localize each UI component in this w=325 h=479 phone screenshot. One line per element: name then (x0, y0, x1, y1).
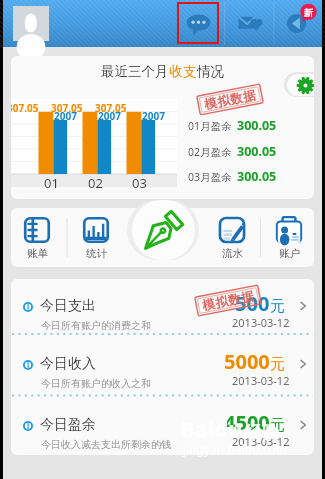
staticText: 今日收入 (40, 355, 96, 373)
staticText: 统计 (86, 247, 107, 260)
staticText: 4500 (224, 409, 270, 436)
button[interactable]: 账单 (11, 208, 64, 267)
staticText: 情况 (197, 63, 224, 80)
button[interactable]: Profile (13, 6, 49, 41)
staticText: jingyan.baidu.com (183, 441, 287, 457)
staticText: 500 (235, 290, 270, 317)
button[interactable]: 账户 (262, 208, 314, 267)
staticText: 今日支出 (40, 297, 96, 315)
staticText: 模拟数据 (203, 87, 258, 113)
staticText: 2007 (142, 109, 165, 123)
staticText: 经验 (245, 422, 279, 443)
button[interactable]: New record (132, 200, 195, 260)
staticText: 2007 (98, 109, 121, 123)
staticText: 流水 (222, 247, 243, 260)
staticText: 今日盈余 (40, 416, 96, 434)
staticText: 03 (132, 174, 147, 192)
staticText: 收 (169, 63, 183, 80)
staticText: Baidu (180, 413, 243, 443)
staticText: 300.05 (237, 143, 277, 160)
staticText: 今日收入减去支出所剩余的钱 (41, 438, 171, 451)
button[interactable]: 今日收入 (11, 334, 314, 396)
staticText: 300.05 (237, 117, 277, 134)
staticText: 最近三个月 (101, 63, 169, 80)
staticText: 2013-03-12 (232, 315, 290, 330)
staticText: 300.05 (237, 168, 277, 185)
staticText: 今日所有账户的收入之和 (41, 377, 151, 390)
staticText: 307.05 (11, 101, 39, 115)
staticText: 307.05 (51, 101, 83, 115)
button[interactable]: Messages (178, 3, 218, 43)
button[interactable]: Settings (284, 72, 314, 97)
staticText: 5000 (224, 348, 270, 375)
staticText: 模拟数据 (201, 288, 256, 314)
staticText: 307.05 (95, 101, 127, 115)
staticText: 支 (183, 63, 197, 80)
staticText: 02 (88, 174, 103, 192)
staticText: 元 (270, 297, 285, 316)
button[interactable]: Mail (232, 4, 270, 42)
staticText: 2013-03-12 (232, 373, 290, 388)
staticText: 2013-03-12 (232, 434, 290, 449)
staticText: 今日所有账户的消费之和 (41, 319, 151, 332)
staticText: 账单 (27, 247, 48, 260)
staticText: 账户 (279, 247, 300, 260)
button[interactable]: 今日盈余 (11, 396, 314, 455)
staticText: 01 (44, 174, 59, 192)
button[interactable]: 今日支出 (11, 279, 314, 334)
button[interactable]: 统计 (69, 208, 123, 267)
staticText: 2007 (54, 109, 77, 123)
staticText: 01月盈余 (188, 119, 232, 133)
button[interactable]: Notifications (280, 4, 318, 42)
staticText: 新 (304, 7, 313, 18)
staticText: 元 (270, 416, 285, 435)
staticText: 元 (270, 355, 285, 374)
button[interactable]: 流水 (205, 208, 259, 267)
staticText: 02月盈余 (188, 145, 232, 159)
staticText: 03月盈余 (188, 170, 232, 184)
